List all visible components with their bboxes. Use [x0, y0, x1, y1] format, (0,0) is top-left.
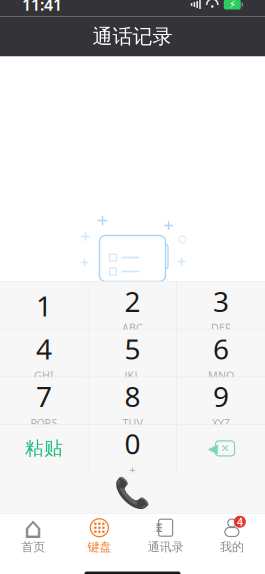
button[interactable]: 6: [177, 330, 265, 377]
staticText: 4: [36, 330, 52, 367]
button[interactable]: 7: [0, 377, 88, 424]
button[interactable]: 5: [88, 330, 176, 377]
button[interactable]: 9: [177, 377, 265, 424]
button[interactable]: 键盘: [66, 514, 132, 558]
staticText: DEF: [211, 321, 231, 335]
staticText: ◀: [207, 441, 217, 456]
button[interactable]: 8: [88, 377, 176, 424]
staticText: 0: [124, 425, 140, 462]
staticText: XYZ: [212, 416, 230, 430]
staticText: 5: [124, 330, 140, 367]
button[interactable]: 1: [0, 282, 88, 329]
staticText: TUV: [122, 416, 142, 430]
button[interactable]: Delete: [177, 425, 265, 472]
button[interactable]: 4: [0, 330, 88, 377]
staticText: ⌂: [24, 511, 43, 544]
staticText: PQRS: [30, 416, 57, 430]
staticText: ⚡︎: [229, 0, 236, 10]
staticText: 9: [213, 378, 229, 415]
staticText: GHI: [34, 368, 54, 382]
button[interactable]: 2: [88, 282, 176, 329]
button[interactable]: 3: [177, 282, 265, 329]
staticText: 通讯录: [148, 540, 184, 554]
staticText: 首页: [21, 540, 45, 554]
staticText: 8: [124, 378, 140, 415]
button[interactable]: 0: [88, 425, 176, 472]
staticText: 粘贴: [25, 437, 63, 460]
button[interactable]: ⌂: [0, 514, 66, 558]
button[interactable]: 4: [199, 514, 265, 558]
staticText: ABC: [122, 321, 143, 335]
button[interactable]: Call: [97, 473, 167, 513]
staticText: 6: [213, 330, 229, 367]
button[interactable]: 通讯录: [132, 514, 199, 558]
staticText: 3: [213, 282, 229, 320]
staticText: 我的: [220, 540, 244, 554]
staticText: 7: [36, 378, 52, 415]
staticText: 键盘: [87, 540, 111, 554]
staticText: MNO: [208, 368, 234, 382]
staticText: 2: [124, 282, 140, 320]
staticText: 1: [36, 287, 52, 324]
staticText: 通话记录: [92, 24, 172, 49]
staticText: JKL: [124, 368, 140, 382]
button[interactable]: 粘贴: [0, 425, 88, 472]
staticText: 4: [237, 515, 243, 529]
staticText: 📞: [114, 476, 151, 510]
staticText: 11:41: [22, 0, 62, 15]
staticText: +: [129, 462, 136, 478]
staticText: ✕: [220, 442, 229, 454]
